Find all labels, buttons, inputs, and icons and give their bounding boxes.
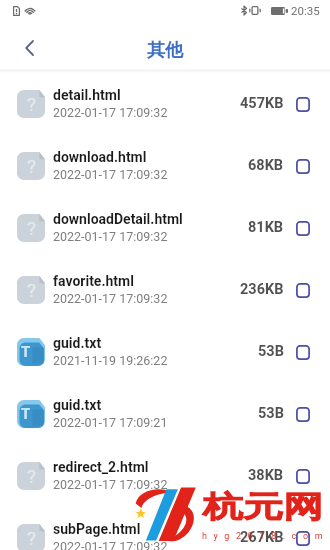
button[interactable]: ? bbox=[0, 135, 330, 197]
staticText: 2022-01-17 17:09:21 bbox=[53, 415, 168, 430]
staticText: download.html bbox=[53, 149, 147, 165]
button[interactable]: Select file bbox=[293, 342, 313, 362]
staticText: T bbox=[21, 343, 31, 361]
button[interactable]: ? bbox=[0, 445, 330, 507]
staticText: guid.txt bbox=[53, 335, 102, 351]
staticText: 81KB bbox=[248, 219, 284, 236]
staticText: 38KB bbox=[248, 467, 284, 484]
staticText: 53B bbox=[258, 405, 284, 422]
staticText: 2021-11-19 19:26:22 bbox=[53, 353, 168, 368]
staticText: 20:35 bbox=[291, 4, 320, 17]
staticText: 457KB bbox=[240, 95, 284, 112]
button[interactable]: T bbox=[0, 321, 330, 383]
staticText: 2022-01-17 17:09:32 bbox=[53, 291, 168, 306]
staticText: favorite.html bbox=[53, 273, 134, 289]
button[interactable]: ? bbox=[0, 197, 330, 259]
staticText: 68KB bbox=[248, 157, 284, 174]
button[interactable]: Select file bbox=[293, 156, 313, 176]
button[interactable]: ? bbox=[0, 73, 330, 135]
staticText: ? bbox=[27, 465, 36, 487]
staticText: ? bbox=[27, 527, 36, 549]
button[interactable]: ? bbox=[0, 507, 330, 550]
button[interactable]: ? bbox=[0, 259, 330, 321]
button[interactable]: Select file bbox=[293, 94, 313, 114]
button[interactable]: Back bbox=[9, 28, 49, 68]
staticText: 2022-01-17 17:09:32 bbox=[53, 539, 168, 550]
button[interactable]: Select file bbox=[293, 218, 313, 238]
staticText: detail.html bbox=[53, 87, 121, 103]
staticText: ? bbox=[27, 279, 36, 301]
button[interactable]: Select file bbox=[293, 528, 313, 548]
staticText: ? bbox=[27, 93, 36, 115]
staticText: 2022-01-17 17:09:32 bbox=[53, 105, 168, 120]
staticText: 2022-01-17 17:09:32 bbox=[53, 229, 168, 244]
staticText: 2022-01-17 17:09:32 bbox=[53, 167, 168, 182]
staticText: subPage.html bbox=[53, 521, 141, 537]
button[interactable]: T bbox=[0, 383, 330, 445]
button[interactable]: Select file bbox=[293, 404, 313, 424]
staticText: downloadDetail.html bbox=[53, 211, 183, 227]
staticText: ? bbox=[27, 155, 36, 177]
button[interactable]: Select file bbox=[293, 280, 313, 300]
staticText: ? bbox=[27, 217, 36, 239]
staticText: 267KB bbox=[240, 529, 284, 546]
staticText: T bbox=[21, 405, 31, 423]
staticText: 其他 bbox=[147, 39, 183, 62]
staticText: guid.txt bbox=[53, 397, 102, 413]
staticText: 236KB bbox=[240, 281, 284, 298]
staticText: 杭元网 bbox=[203, 488, 323, 526]
staticText: redirect_2.html bbox=[53, 459, 149, 475]
staticText: 53B bbox=[258, 343, 284, 360]
staticText: hyg2018.com bbox=[202, 531, 330, 542]
button[interactable]: Select file bbox=[293, 466, 313, 486]
staticText: 2022-01-17 17:09:32 bbox=[53, 477, 168, 492]
